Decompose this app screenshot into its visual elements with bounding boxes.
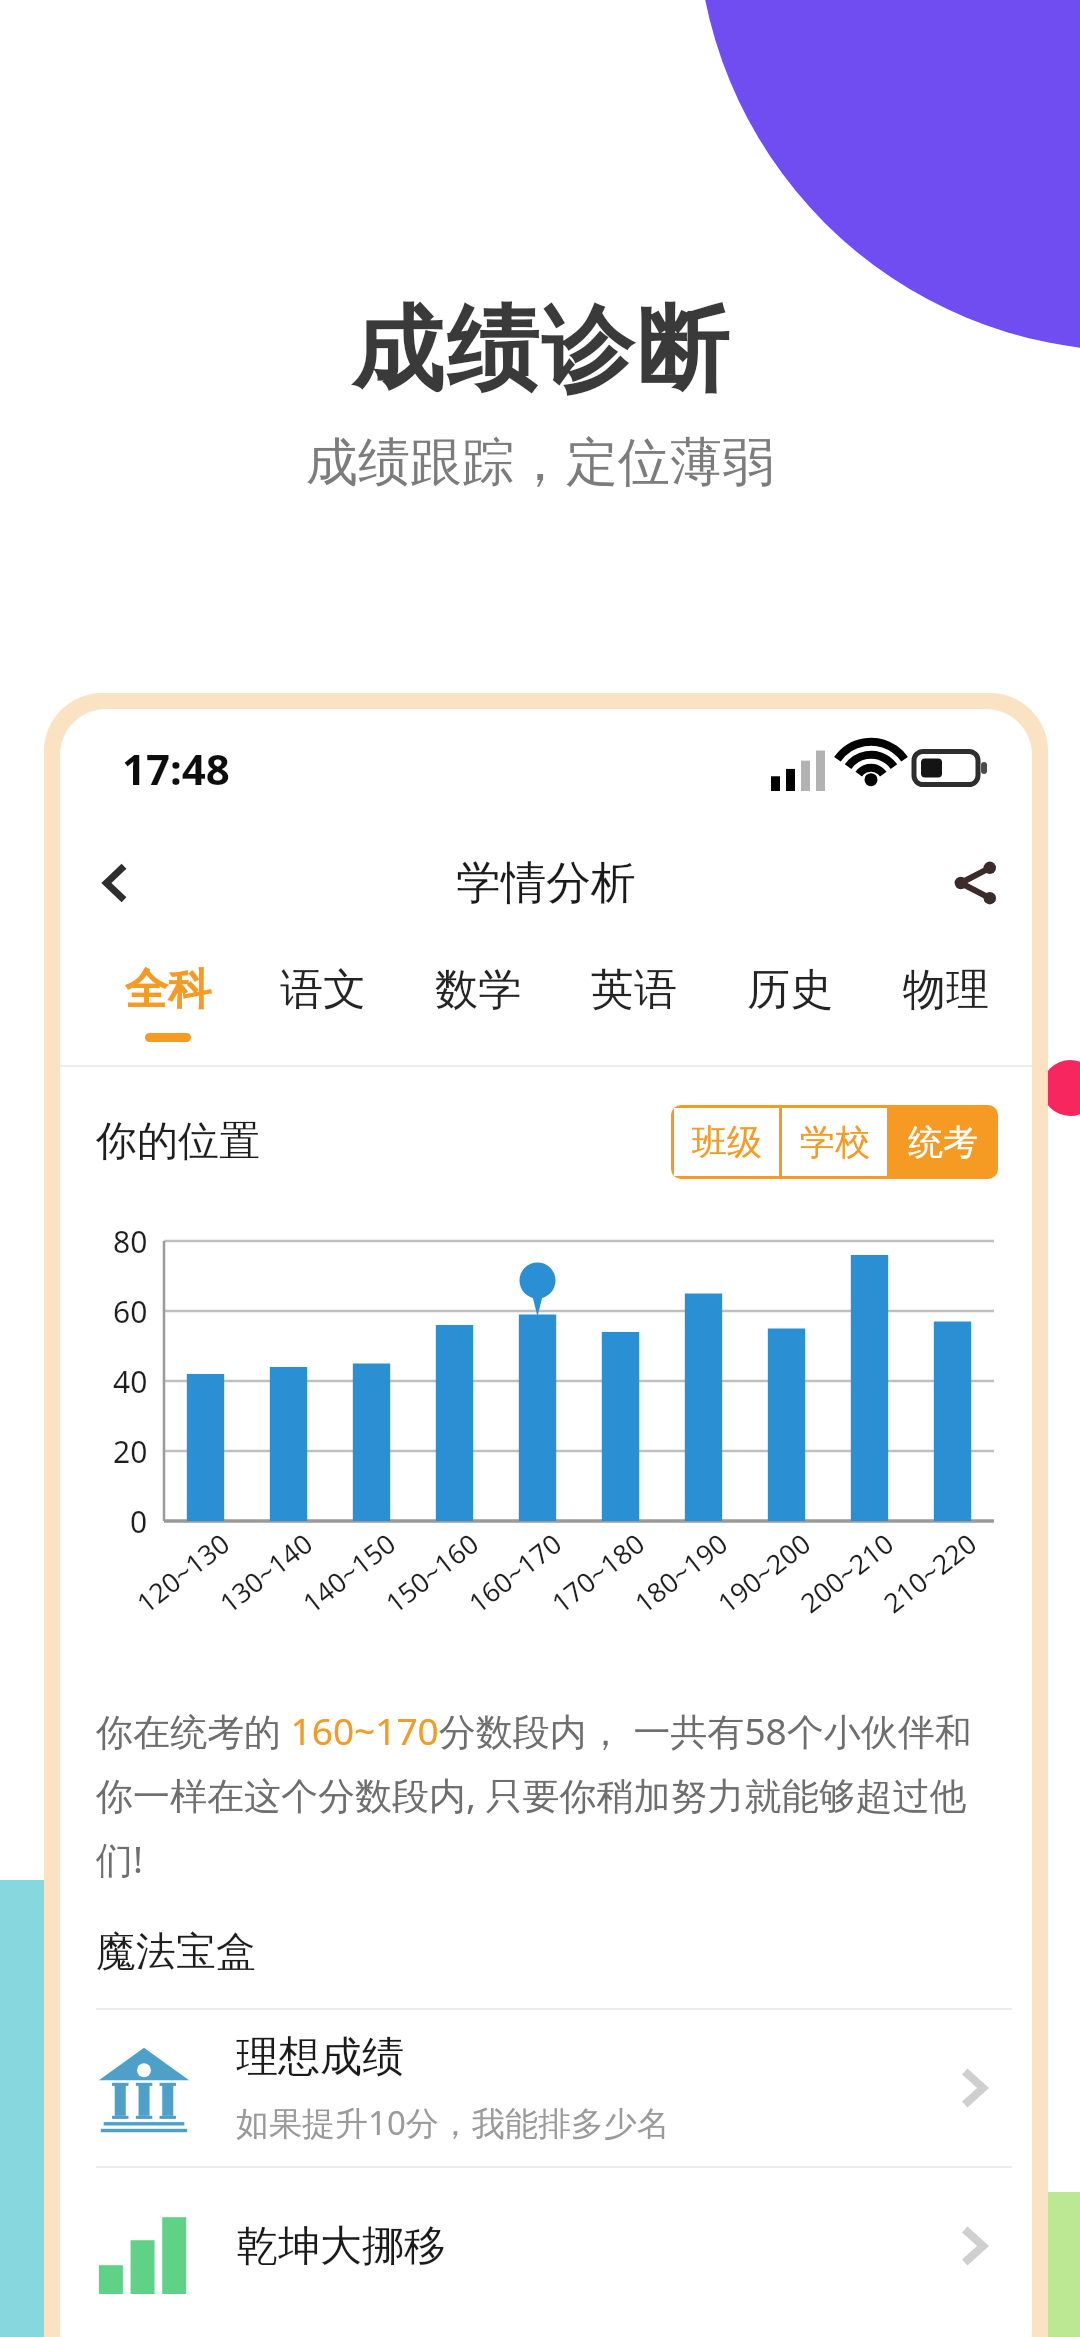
staticText: 你在统考的 160~170分数段内， 一共有58个小伙伴和你一样在这个分数段内,… — [96, 1705, 1002, 1884]
staticText: 乾坤大挪移 — [236, 2220, 446, 2273]
staticText: 物理 — [903, 963, 989, 1017]
button[interactable]: 物理 — [868, 939, 1024, 1065]
button[interactable]: 语文 — [245, 939, 400, 1065]
staticText: 语文 — [280, 963, 366, 1017]
staticText: 你的位置 — [96, 1116, 260, 1168]
staticText: 统考 — [908, 1120, 978, 1164]
button[interactable]: 数学 — [400, 939, 556, 1065]
staticText: 17:48 — [122, 740, 230, 797]
button[interactable]: 历史 — [712, 939, 868, 1065]
button[interactable]: Share — [920, 827, 1032, 939]
staticText: 历史 — [747, 963, 833, 1017]
staticText: 学校 — [800, 1120, 870, 1164]
button[interactable]: 英语 — [556, 939, 712, 1065]
staticText: 理想成绩 — [236, 2031, 404, 2084]
button[interactable]: 理想成绩 — [60, 2010, 1032, 2166]
button[interactable]: 统考 — [890, 1108, 995, 1176]
button[interactable]: 乾坤大挪移 — [60, 2168, 1032, 2324]
button[interactable]: Back — [60, 827, 172, 939]
button[interactable]: 全科 — [90, 939, 245, 1065]
staticText: 班级 — [692, 1120, 762, 1164]
staticText: 成绩跟踪，定位薄弱 — [306, 430, 774, 496]
staticText: 英语 — [591, 963, 677, 1017]
button[interactable]: 学校 — [782, 1108, 887, 1176]
staticText: 学情分析 — [456, 855, 636, 912]
staticText: 全科 — [125, 963, 211, 1017]
staticText: 如果提升10分，我能排多少名 — [236, 2100, 670, 2145]
staticText: 魔法宝盒 — [96, 1926, 256, 1976]
staticText: 成绩诊断 — [350, 292, 730, 408]
button[interactable]: 班级 — [674, 1108, 779, 1176]
staticText: 数学 — [435, 963, 521, 1017]
